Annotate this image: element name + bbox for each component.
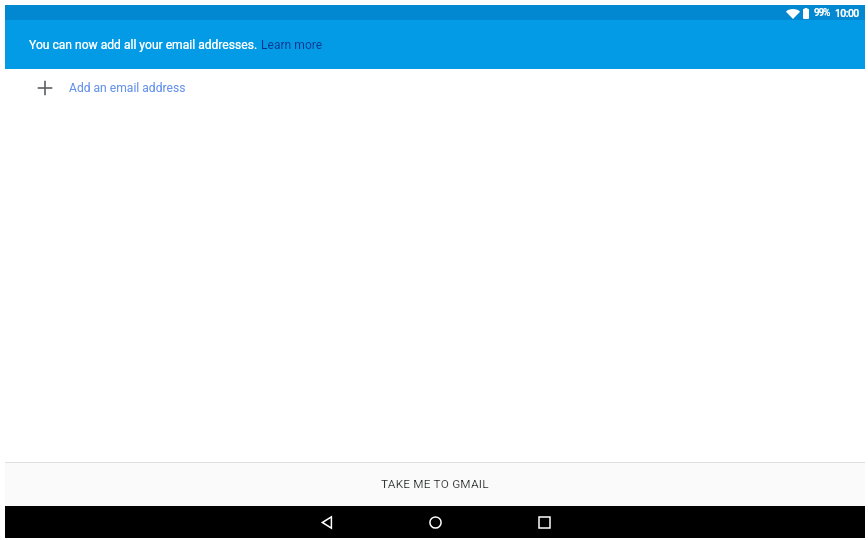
staticText: 10:00: [835, 7, 859, 19]
staticText: You can now add all your email addresses…: [29, 38, 261, 52]
button[interactable]: Add an email address: [5, 69, 865, 107]
button[interactable]: Home: [423, 510, 447, 534]
staticText: 99%: [814, 7, 830, 19]
staticText: TAKE ME TO GMAIL: [381, 477, 489, 491]
button[interactable]: Recent apps: [532, 510, 556, 534]
button[interactable]: TAKE ME TO GMAIL: [5, 462, 865, 506]
staticText: Learn more: [261, 38, 323, 52]
button[interactable]: Back: [315, 510, 339, 534]
staticText: Add an email address: [69, 81, 186, 95]
button[interactable]: You can now add all your email addresses…: [5, 20, 865, 69]
button[interactable]: Learn more: [261, 38, 323, 52]
